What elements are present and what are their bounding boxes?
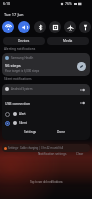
button[interactable]: Clear	[76, 152, 84, 156]
staticText: Clear	[76, 152, 84, 156]
button[interactable]: Notification settings	[38, 152, 67, 156]
staticText: Media	[63, 39, 73, 43]
staticText: Samsung Health	[11, 56, 34, 60]
staticText: Silent notifications	[4, 77, 32, 81]
button[interactable]: Flashlight	[79, 21, 91, 33]
staticText: Silent	[19, 121, 27, 125]
staticText: 56 steps	[5, 63, 21, 68]
button[interactable]: Alert	[5, 111, 55, 117]
button[interactable]: Airplane mode	[64, 21, 76, 33]
staticText: Settings · Cable charging | 3 hr 42 m un…	[8, 146, 64, 150]
staticText: Devices	[18, 39, 30, 43]
staticText: 76%	[65, 1, 72, 6]
button[interactable]: Android System	[2, 84, 90, 95]
button[interactable]: Expand	[80, 87, 86, 93]
staticText: USB connection	[5, 101, 31, 106]
staticText: Alert	[19, 112, 26, 116]
button[interactable]: Done	[57, 130, 66, 134]
button[interactable]: Settings	[24, 130, 37, 134]
button[interactable]: Sound	[18, 21, 30, 33]
staticText: Alerting notifications	[4, 47, 36, 51]
button[interactable]: Media	[47, 37, 89, 45]
staticText: Settings	[24, 130, 37, 134]
button[interactable]: Samsung Health	[2, 53, 90, 76]
staticText: Notification settings	[38, 152, 67, 156]
button[interactable]: Devices	[3, 37, 45, 45]
staticText: Tap to see old notifications	[30, 180, 63, 184]
staticText: Your target is 6,000 steps	[5, 69, 40, 73]
button[interactable]: Expand	[80, 100, 86, 106]
staticText: Android System	[11, 87, 33, 91]
staticText: 6:10	[3, 1, 11, 6]
button[interactable]: Silent	[5, 120, 55, 126]
button[interactable]: Settings · Cable charging | 3 hr 42 m un…	[2, 144, 90, 152]
button[interactable]: Wi-Fi	[2, 21, 14, 33]
staticText: Tue 17 Jun	[4, 12, 24, 17]
staticText: Done	[57, 130, 66, 134]
button[interactable]: Bluetooth	[34, 21, 46, 33]
button[interactable]: Screen record	[49, 21, 61, 33]
